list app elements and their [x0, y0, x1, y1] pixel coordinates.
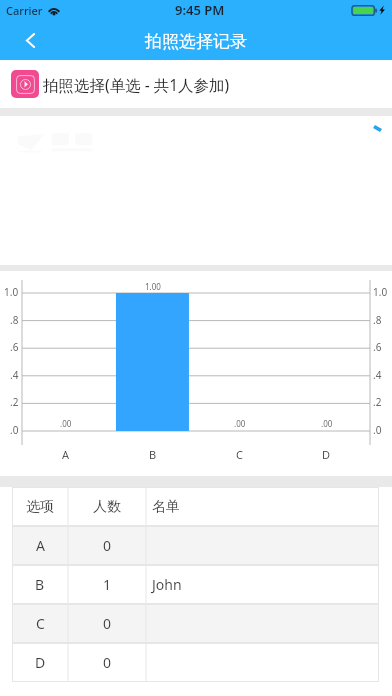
staticText: 0 — [103, 653, 112, 672]
staticText: .6 — [10, 340, 19, 352]
staticText: A — [36, 536, 45, 555]
staticText: .0 — [373, 423, 382, 435]
staticText: .8 — [373, 313, 382, 325]
staticText: B — [149, 447, 157, 462]
staticText: .8 — [10, 313, 19, 325]
button[interactable]: Back — [0, 20, 61, 60]
staticText: 1.0 — [373, 285, 388, 297]
staticText: 选项 — [26, 498, 54, 516]
staticText: Carrier — [6, 3, 43, 18]
staticText: .00 — [321, 418, 333, 429]
staticText: .6 — [373, 340, 382, 352]
staticText: 1 — [103, 575, 112, 594]
staticText: 拍照选择(单选 - 共1人参加) — [43, 74, 230, 95]
staticText: .4 — [10, 368, 19, 380]
staticText: 拍照选择记录 — [145, 31, 247, 52]
staticText: .0 — [10, 423, 19, 435]
staticText: .00 — [234, 418, 246, 429]
staticText: 1.00 — [145, 281, 161, 292]
staticText: 0 — [103, 614, 112, 633]
staticText: .2 — [373, 395, 382, 407]
staticText: 0 — [103, 536, 112, 555]
staticText: 名单 — [152, 498, 180, 516]
staticText: 1.0 — [4, 285, 19, 297]
staticText: 人数 — [93, 498, 121, 516]
staticText: A — [62, 447, 70, 462]
staticText: D — [322, 447, 331, 462]
staticText: 9:45 PM — [175, 1, 225, 19]
staticText: D — [35, 653, 46, 672]
staticText: .4 — [373, 368, 382, 380]
staticText: .2 — [10, 395, 19, 407]
staticText: John — [152, 575, 182, 594]
button[interactable]: 拍照选择(单选 - 共1人参加) — [0, 60, 392, 108]
staticText: C — [36, 614, 45, 633]
staticText: .00 — [60, 418, 72, 429]
staticText: B — [35, 575, 45, 594]
staticText: C — [236, 447, 243, 462]
